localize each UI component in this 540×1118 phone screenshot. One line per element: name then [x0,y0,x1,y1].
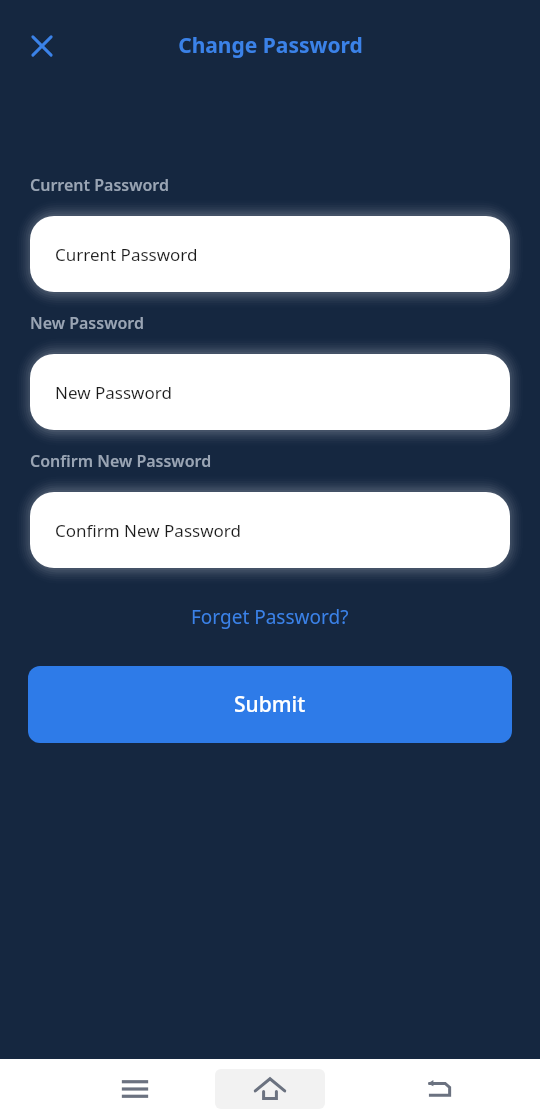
staticText: New Password [55,381,172,404]
staticText: New Password [30,312,144,334]
staticText: Submit [234,690,306,719]
button[interactable]: Home [242,1061,298,1117]
staticText: Current Password [30,174,169,196]
staticText: Forget Password? [191,604,349,630]
staticText: Change Password [178,31,363,60]
button[interactable]: Recent apps [107,1061,163,1117]
button[interactable]: Back [411,1061,467,1117]
staticText: Confirm New Password [55,519,241,542]
button[interactable]: Submit [28,666,512,743]
button[interactable]: Confirm New Password [30,492,510,568]
button[interactable]: Current Password [30,216,510,292]
button[interactable]: Close [20,24,64,68]
button[interactable]: New Password [30,354,510,430]
staticText: Current Password [55,243,198,266]
staticText: Confirm New Password [30,450,212,472]
button[interactable]: Forget Password? [181,598,359,636]
